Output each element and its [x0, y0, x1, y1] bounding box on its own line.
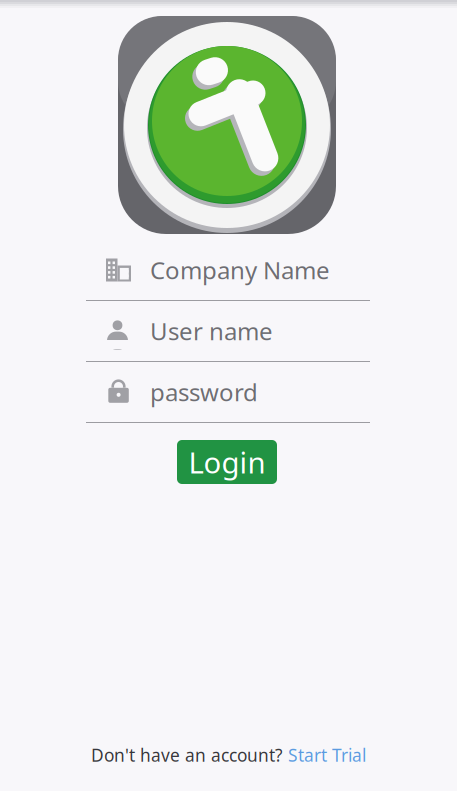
staticText: Don't have an account?: [91, 743, 283, 766]
staticText: Start Trial: [288, 743, 366, 766]
staticText: Company Name: [150, 254, 330, 286]
staticText: password: [150, 376, 258, 408]
staticText: User name: [150, 315, 273, 347]
button[interactable]: Login: [177, 440, 277, 484]
staticText: Login: [188, 442, 265, 481]
button[interactable]: Start Trial: [288, 743, 366, 766]
